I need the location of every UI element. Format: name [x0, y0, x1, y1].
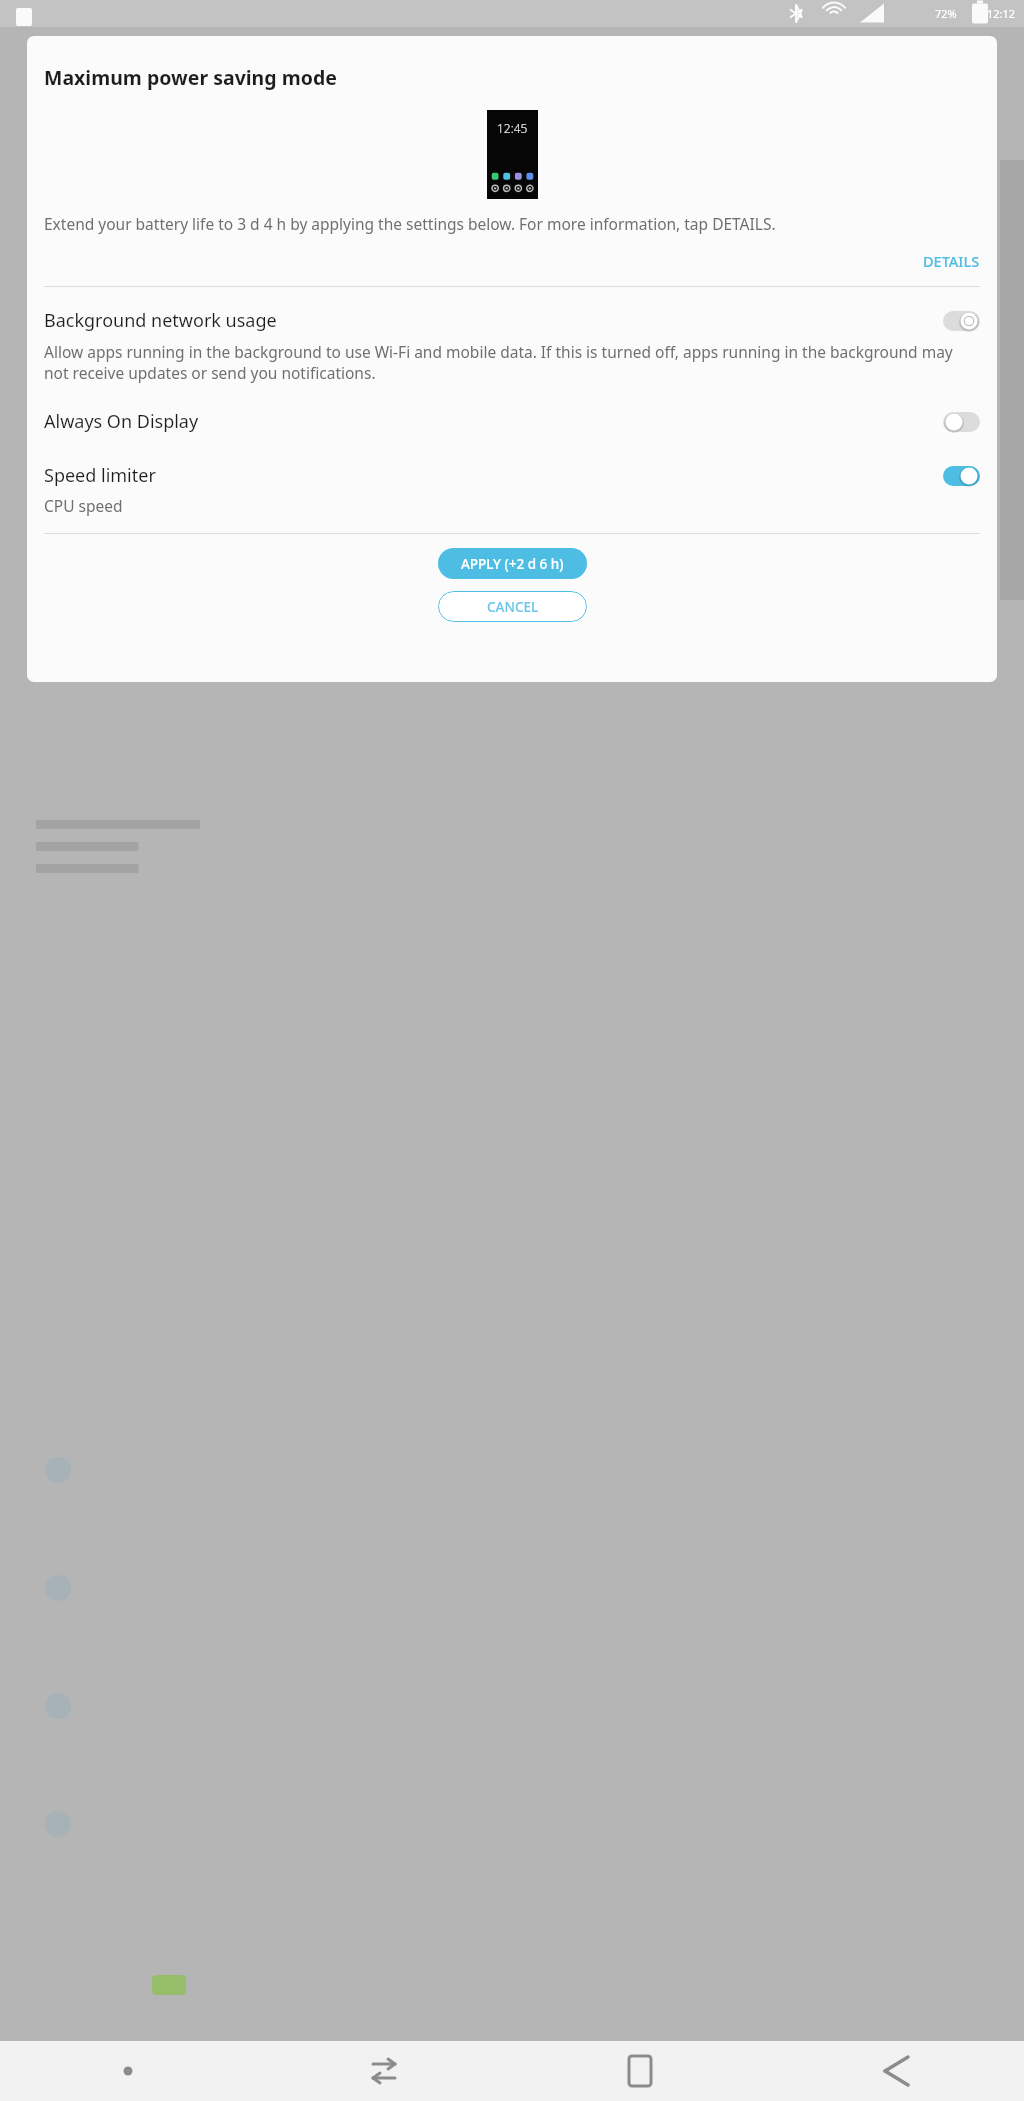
staticText: Background network usage — [44, 308, 943, 333]
staticText: Extend your battery life to 3 d 4 h by a… — [44, 213, 776, 234]
staticText: Speed limiter — [44, 463, 943, 488]
button[interactable]: Off — [943, 412, 980, 432]
staticText: Always On Display — [44, 409, 943, 434]
button[interactable]: Switch windows — [256, 2041, 512, 2101]
staticText: CPU speed — [44, 495, 123, 516]
staticText: Maximum power saving mode — [44, 64, 337, 91]
button[interactable]: Speed limiter — [27, 463, 997, 488]
button[interactable]: On — [943, 466, 980, 486]
staticText: APPLY (+2 d 6 h) — [461, 555, 564, 573]
staticText: DETAILS — [923, 251, 980, 271]
button[interactable]: Back — [768, 2041, 1024, 2101]
button[interactable]: Off — [943, 311, 980, 331]
staticText: 12:45 — [497, 120, 528, 136]
button[interactable]: Always On Display — [27, 409, 997, 434]
button[interactable]: Recent apps — [0, 2041, 256, 2101]
staticText: 72% — [935, 6, 957, 21]
button[interactable]: Background network usage — [27, 308, 997, 333]
button[interactable]: CANCEL — [438, 591, 587, 622]
staticText: Allow apps running in the background to … — [44, 341, 975, 383]
staticText: 12:12 — [987, 6, 1016, 21]
button[interactable]: Home — [512, 2041, 768, 2101]
button[interactable]: APPLY (+2 d 6 h) — [438, 548, 587, 579]
button[interactable]: DETAILS — [906, 246, 997, 276]
staticText: CANCEL — [487, 598, 539, 616]
